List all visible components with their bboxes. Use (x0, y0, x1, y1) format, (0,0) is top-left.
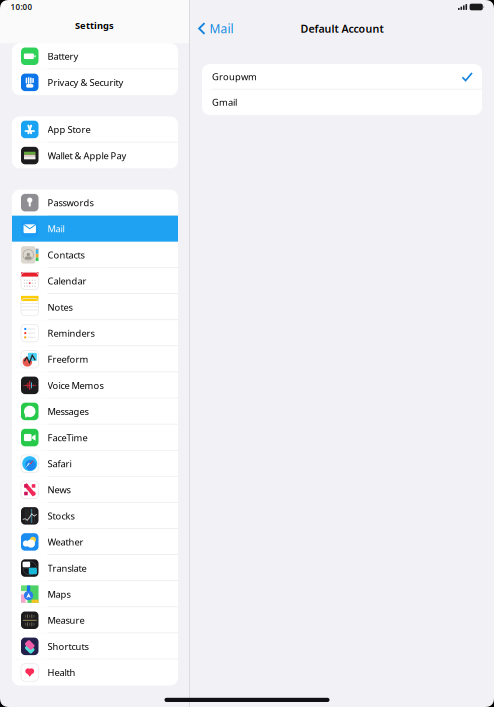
button[interactable]: Passwords (12, 190, 178, 216)
button[interactable]: Reminders (12, 320, 178, 346)
staticText: Messages (47, 405, 88, 418)
staticText: FaceTime (47, 431, 87, 444)
staticText: Shortcuts (47, 640, 88, 653)
button[interactable]: Privacy & Security (12, 69, 178, 95)
button[interactable]: Maps (12, 581, 178, 607)
button[interactable]: Health (12, 659, 178, 685)
staticText: Freeform (47, 353, 88, 365)
button[interactable]: Calendar (12, 268, 178, 294)
button[interactable]: Battery (12, 43, 178, 69)
staticText: Wallet & Apple Pay (47, 149, 126, 162)
staticText: Voice Memos (47, 379, 103, 392)
button[interactable]: Measure (12, 607, 178, 633)
staticText: 10:00 (10, 2, 32, 12)
button[interactable]: Gmail (202, 89, 482, 115)
button[interactable]: Mail (190, 17, 240, 39)
button[interactable]: Voice Memos (12, 372, 178, 398)
button[interactable]: Translate (12, 555, 178, 581)
staticText: Contacts (47, 249, 84, 261)
staticText: Groupwm (212, 71, 257, 83)
button[interactable]: App Store (12, 116, 178, 142)
button[interactable]: News (12, 477, 178, 503)
button[interactable]: Freeform (12, 346, 178, 372)
button[interactable]: Safari (12, 451, 178, 477)
staticText: Calendar (47, 275, 86, 287)
staticText: App Store (47, 123, 90, 136)
button[interactable]: Shortcuts (12, 633, 178, 659)
button[interactable]: Wallet & Apple Pay (12, 142, 178, 169)
staticText: Health (47, 666, 75, 679)
staticText: Maps (47, 588, 70, 600)
staticText: Passwords (47, 196, 93, 209)
staticText: Weather (47, 536, 83, 548)
staticText: Privacy & Security (47, 76, 123, 89)
button[interactable]: Groupwm (202, 64, 482, 89)
button[interactable]: Weather (12, 529, 178, 555)
button[interactable]: FaceTime (12, 424, 178, 451)
staticText: Settings (75, 19, 114, 32)
staticText: Mail (47, 223, 64, 235)
staticText: Battery (47, 50, 78, 62)
staticText: Stocks (47, 510, 74, 522)
staticText: Default Account (300, 21, 383, 36)
button[interactable]: Stocks (12, 503, 178, 529)
button[interactable]: Notes (12, 294, 178, 320)
staticText: Safari (47, 457, 71, 470)
staticText: Mail (210, 20, 234, 36)
staticText: Notes (47, 301, 72, 313)
button[interactable]: Contacts (12, 242, 178, 268)
staticText: Gmail (212, 96, 237, 108)
staticText: Measure (47, 614, 84, 626)
staticText: Translate (47, 562, 86, 574)
staticText: News (47, 484, 70, 496)
staticText: Reminders (47, 327, 94, 339)
button[interactable]: Messages (12, 398, 178, 424)
button[interactable]: Mail (12, 216, 178, 242)
